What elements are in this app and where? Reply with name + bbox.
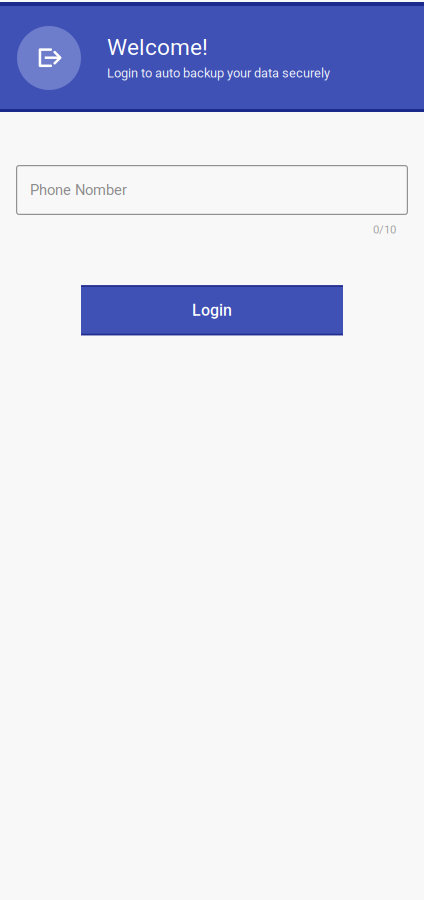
staticText: Login to auto backup your data securely — [107, 66, 330, 81]
staticText: Phone Nomber — [30, 181, 127, 199]
button[interactable]: Sign out — [17, 26, 81, 90]
staticText: Welcome! — [107, 34, 208, 61]
button[interactable]: Login — [81, 285, 343, 335]
staticText: 0/10 — [373, 223, 396, 236]
button[interactable]: Phone Nomber — [16, 165, 408, 215]
staticText: Login — [192, 301, 232, 320]
